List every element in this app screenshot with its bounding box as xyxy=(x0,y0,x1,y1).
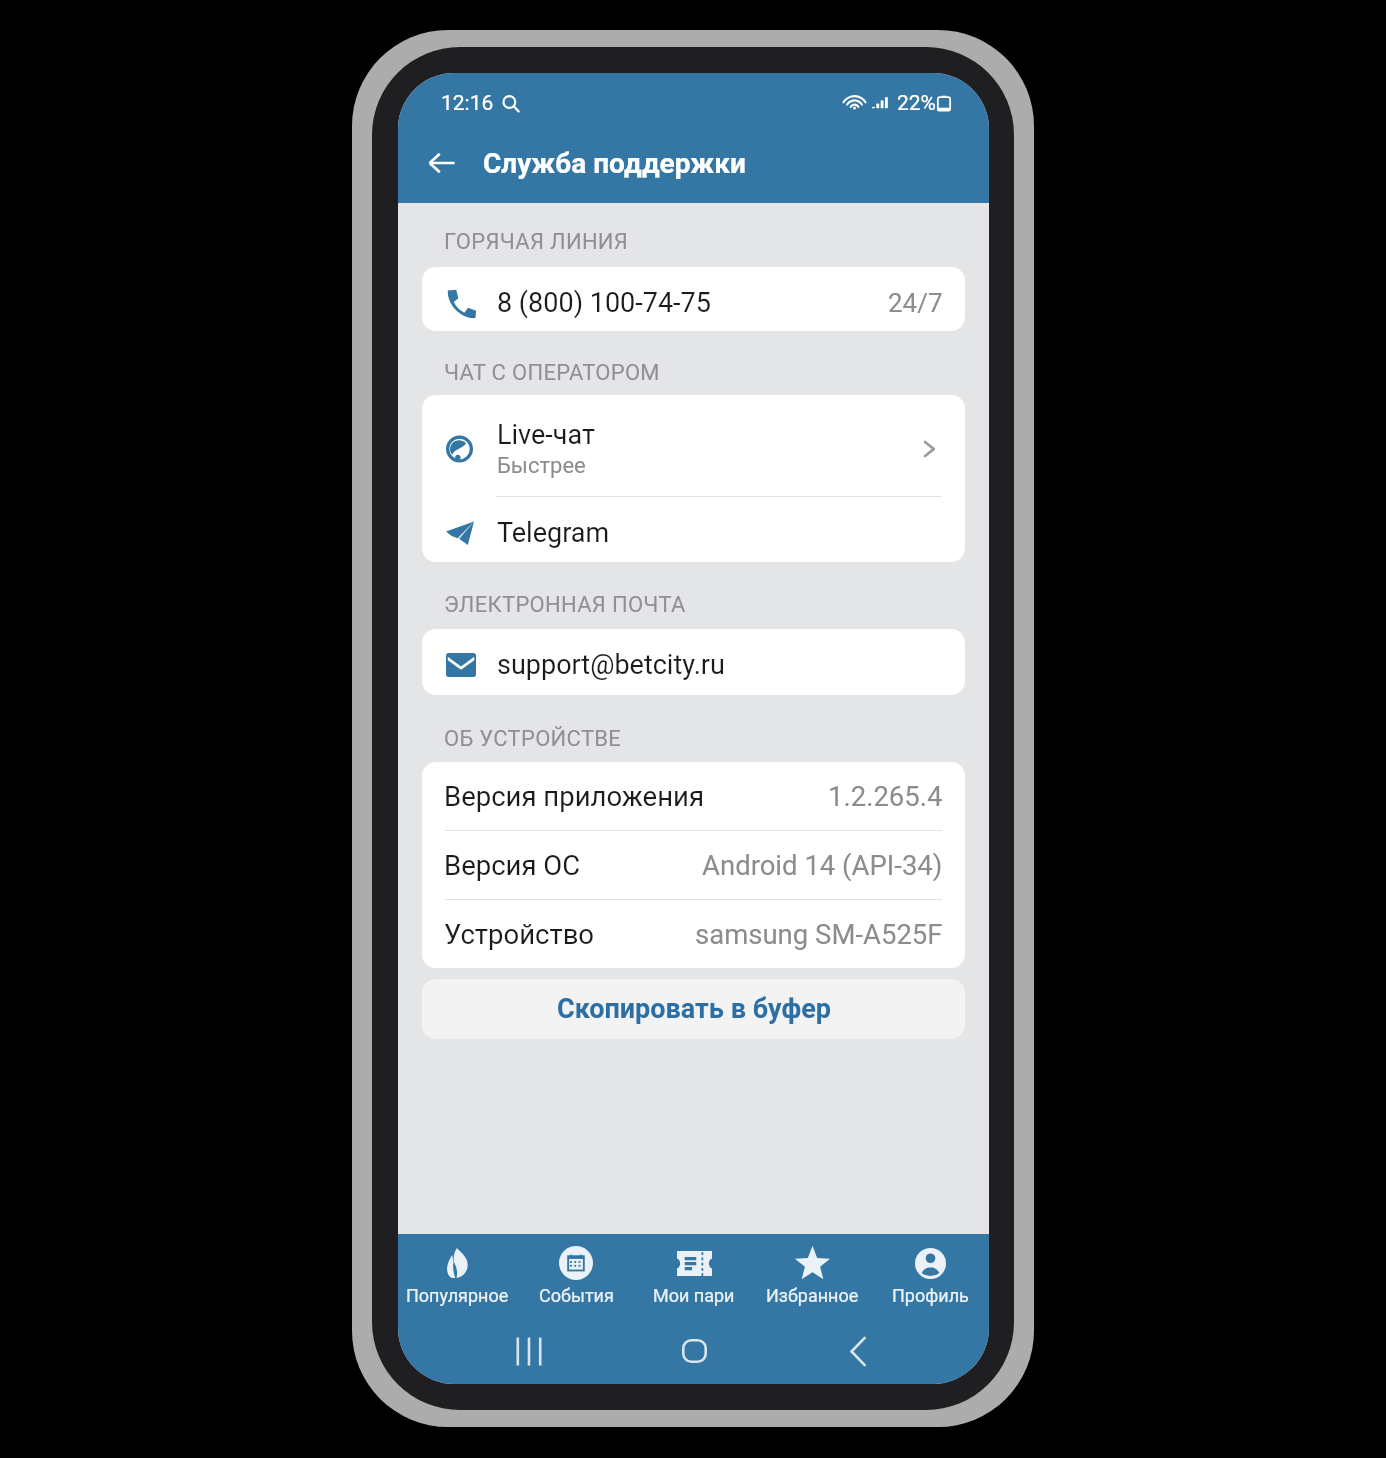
button[interactable]: Telegram xyxy=(422,497,965,562)
staticText: ЧАТ С ОПЕРАТОРОМ xyxy=(444,360,660,386)
staticText: 8 (800) 100-74-75 xyxy=(497,287,711,319)
button[interactable]: Back xyxy=(831,1324,885,1378)
button[interactable]: support@betcity.ru xyxy=(422,629,965,695)
staticText: Android 14 (API-34) xyxy=(702,849,943,881)
staticText: support@betcity.ru xyxy=(497,649,725,681)
staticText: Версия приложения xyxy=(444,780,705,812)
button[interactable]: Профиль xyxy=(871,1234,989,1318)
staticText: Скопировать в буфер xyxy=(557,993,831,1025)
staticText: Устройство xyxy=(444,918,595,950)
button[interactable]: Избранное xyxy=(753,1234,871,1318)
staticText: Telegram xyxy=(497,517,610,549)
staticText: Профиль xyxy=(892,1285,969,1306)
staticText: ГОРЯЧАЯ ЛИНИЯ xyxy=(444,229,629,255)
staticText: События xyxy=(539,1285,614,1306)
staticText: 12:16 xyxy=(441,91,494,116)
staticText: Live-чат xyxy=(497,419,595,451)
staticText: Популярное xyxy=(406,1285,509,1306)
staticText: 1.2.265.4 xyxy=(828,780,943,812)
staticText: samsung SM-A525F xyxy=(695,918,943,950)
button[interactable]: Home xyxy=(667,1324,721,1378)
staticText: ЭЛЕКТРОННАЯ ПОЧТА xyxy=(444,592,686,618)
staticText: Версия ОС xyxy=(444,849,581,881)
button[interactable]: Back xyxy=(418,139,466,187)
button[interactable]: Скопировать в буфер xyxy=(422,979,965,1039)
staticText: ОБ УСТРОЙСТВЕ xyxy=(444,726,622,752)
button[interactable]: Recent apps xyxy=(502,1324,556,1378)
button[interactable]: 8 (800) 100-74-75 xyxy=(422,267,965,331)
staticText: Мои пари xyxy=(653,1285,735,1306)
staticText: 24/7 xyxy=(888,288,943,318)
button[interactable]: Популярное xyxy=(398,1234,517,1318)
staticText: 22% xyxy=(897,91,936,116)
staticText: Служба поддержки xyxy=(483,147,746,180)
button[interactable]: События xyxy=(517,1234,635,1318)
staticText: Быстрее xyxy=(497,453,586,479)
staticText: Избранное xyxy=(766,1285,859,1306)
button[interactable]: Live-чат xyxy=(422,395,965,496)
button[interactable]: Мои пари xyxy=(635,1234,753,1318)
